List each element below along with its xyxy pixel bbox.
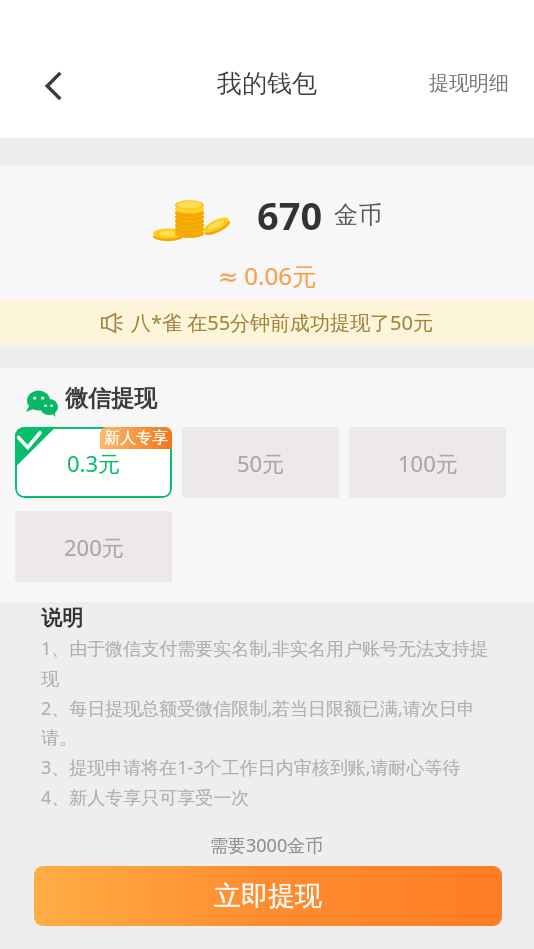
- button[interactable]: 0.3元: [15, 427, 172, 498]
- button[interactable]: 200元: [15, 511, 172, 582]
- button[interactable]: 100元: [349, 427, 506, 498]
- staticText: ≈ 0.06元: [218, 259, 316, 292]
- button[interactable]: 提现明细: [409, 59, 534, 108]
- button[interactable]: 50元: [182, 427, 339, 498]
- staticText: 50元: [237, 448, 285, 478]
- staticText: 八*雀 在55分钟前成功提现了50元: [131, 309, 433, 336]
- staticText: 需要3000金币: [210, 833, 324, 858]
- staticText: 0.3元: [67, 448, 121, 478]
- button[interactable]: Back: [25, 58, 81, 114]
- staticText: 立即提现: [214, 879, 322, 913]
- staticText: 670: [257, 189, 323, 241]
- staticText: 微信提现: [65, 384, 157, 413]
- staticText: 100元: [398, 448, 458, 478]
- staticText: 金币: [334, 200, 382, 230]
- staticText: 我的钱包: [217, 68, 317, 99]
- staticText: 提现明细: [429, 71, 509, 96]
- staticText: 1、由于微信支付需要实名制,非实名用户账号无法支持提 现 2、每日提现总额受微信…: [41, 636, 489, 809]
- button[interactable]: 立即提现: [34, 866, 502, 926]
- staticText: 新人专享: [104, 428, 168, 448]
- staticText: 说明: [41, 605, 83, 631]
- staticText: 200元: [64, 532, 124, 562]
